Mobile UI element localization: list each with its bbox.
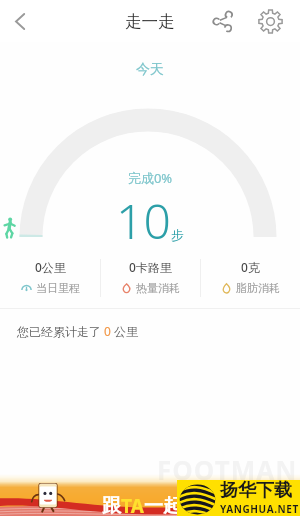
staticText: 今天 bbox=[0, 61, 300, 79]
button[interactable]: Share bbox=[206, 0, 238, 42]
staticText: 10 bbox=[116, 188, 171, 253]
button[interactable]: 0公里 bbox=[0, 259, 100, 295]
staticText: 一起走 bbox=[144, 494, 201, 516]
button[interactable]: 跟 bbox=[0, 474, 300, 516]
button[interactable]: 0克 bbox=[201, 259, 300, 295]
staticText: 0公里 bbox=[35, 259, 66, 275]
staticText: YANGHUA.NET bbox=[220, 502, 299, 515]
button[interactable]: Settings bbox=[254, 0, 286, 42]
staticText: 脂肪消耗 bbox=[236, 281, 280, 295]
staticText: TA bbox=[121, 493, 144, 516]
staticText: FOOTMAN bbox=[157, 452, 298, 487]
button[interactable]: 0卡路里 bbox=[101, 259, 200, 295]
staticText: 扬华下载 bbox=[220, 479, 292, 502]
staticText: 热量消耗 bbox=[136, 281, 180, 295]
button[interactable]: Back bbox=[0, 0, 40, 42]
staticText: 您已经累计走了 0 公里 bbox=[17, 323, 139, 339]
staticText: 完成0% bbox=[0, 169, 300, 187]
staticText: 走一走 bbox=[125, 11, 175, 32]
staticText: 步 bbox=[171, 227, 184, 243]
staticText: 跟 bbox=[102, 494, 121, 516]
staticText: 0卡路里 bbox=[129, 259, 172, 275]
staticText: 当日里程 bbox=[36, 281, 80, 295]
staticText: 0克 bbox=[241, 259, 260, 275]
